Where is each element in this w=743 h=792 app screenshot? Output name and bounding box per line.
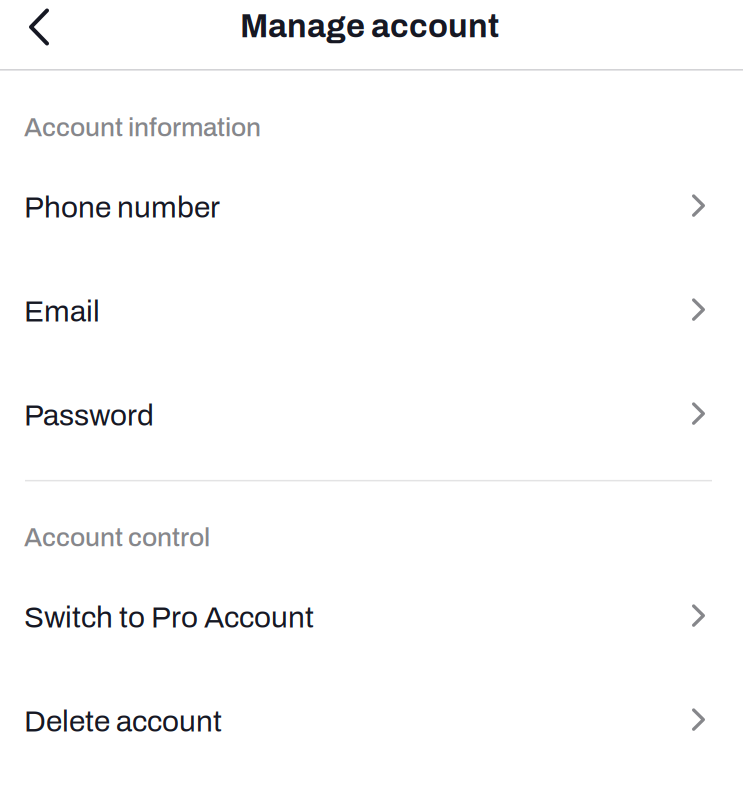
staticText: Account control xyxy=(24,523,210,552)
staticText: Phone number xyxy=(24,191,220,224)
button[interactable]: Delete account xyxy=(0,667,743,771)
button[interactable]: Switch to Pro Account xyxy=(0,563,743,667)
staticText: Delete account xyxy=(24,705,222,738)
button[interactable]: Password xyxy=(0,361,743,465)
staticText: Account information xyxy=(24,113,261,142)
staticText: Password xyxy=(24,399,154,432)
button[interactable]: Phone number xyxy=(0,153,743,257)
button[interactable]: Back xyxy=(0,0,67,52)
button[interactable]: Email xyxy=(0,257,743,361)
staticText: Switch to Pro Account xyxy=(24,601,314,634)
staticText: Email xyxy=(24,295,100,328)
staticText: Manage account xyxy=(240,9,499,44)
